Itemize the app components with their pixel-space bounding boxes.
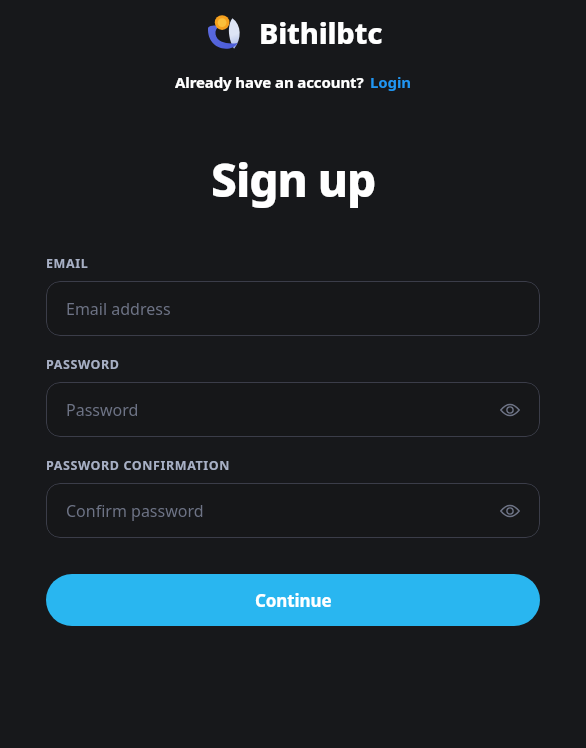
staticText: Sign up (211, 148, 376, 211)
button[interactable]: Login (370, 72, 411, 92)
button[interactable]: Email address (46, 281, 540, 336)
button[interactable]: Password (46, 382, 540, 437)
staticText: PASSWORD (46, 356, 120, 373)
staticText: Email address (66, 298, 522, 320)
staticText: Already have an account? (175, 72, 364, 92)
staticText: Password (66, 399, 498, 421)
button[interactable]: Show password (498, 499, 522, 523)
staticText: Continue (255, 589, 332, 612)
button[interactable]: Bithilbtc (0, 11, 586, 53)
staticText: Login (370, 72, 411, 92)
staticText: EMAIL (46, 255, 89, 272)
button[interactable]: Confirm password (46, 483, 540, 538)
staticText: PASSWORD CONFIRMATION (46, 457, 231, 474)
button[interactable]: Continue (46, 574, 540, 626)
button[interactable]: Show password (498, 398, 522, 422)
staticText: Bithilbtc (259, 13, 383, 52)
staticText: Confirm password (66, 500, 498, 522)
